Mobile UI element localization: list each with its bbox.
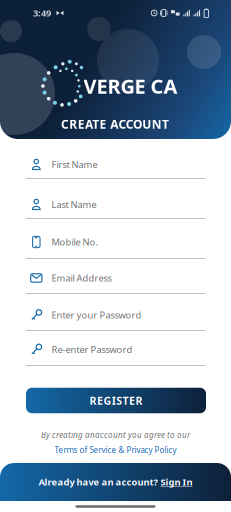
staticText: By creating anaccount you agree to our: [41, 430, 190, 440]
staticText: Terms of Service & Privacy Policy: [54, 445, 176, 455]
button[interactable]: Terms of Service & Privacy Policy: [54, 445, 176, 455]
staticText: 3:49: [33, 7, 51, 19]
staticText: CREATE ACCOUNT: [61, 116, 169, 132]
button[interactable]: Re-enter Password: [26, 331, 205, 375]
staticText: VERGE CA: [83, 73, 177, 99]
staticText: Re-enter Password: [51, 343, 132, 356]
button[interactable]: Email Address: [26, 259, 205, 303]
staticText: Last Name: [51, 198, 96, 211]
staticText: REGISTER: [90, 393, 142, 408]
button[interactable]: Mobile No.: [26, 224, 205, 268]
staticText: Email Address: [51, 272, 111, 284]
button[interactable]: REGISTER: [26, 388, 206, 413]
staticText: Enter your Password: [51, 309, 141, 321]
button[interactable]: Last Name: [26, 184, 205, 228]
button[interactable]: Enter your Password: [26, 296, 205, 340]
staticText: First Name: [51, 158, 97, 171]
staticText: Already have an account?: [38, 476, 157, 488]
staticText: Sign In: [160, 476, 192, 488]
button[interactable]: First Name: [26, 144, 205, 188]
button[interactable]: Already have an account?: [0, 463, 231, 501]
staticText: Mobile No.: [51, 236, 98, 248]
